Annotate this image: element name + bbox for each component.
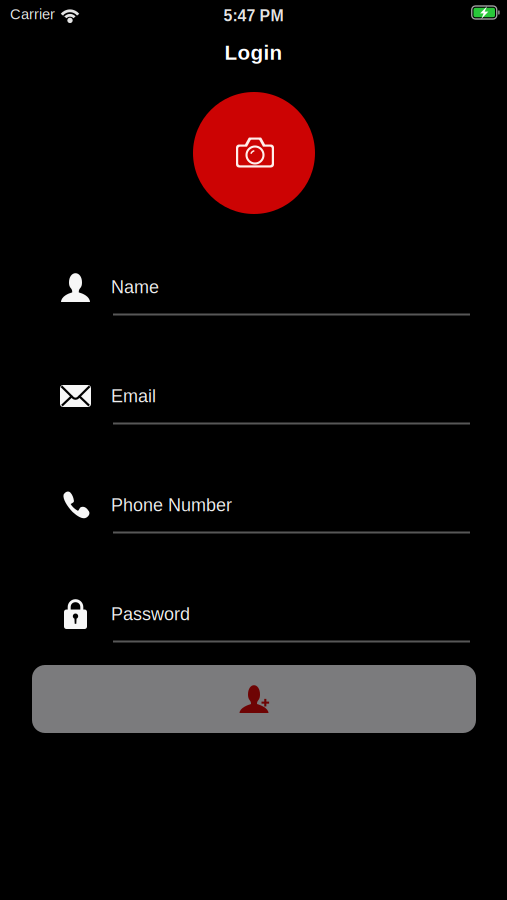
- staticText: Email: [111, 386, 156, 406]
- button[interactable]: Sign up: [32, 665, 476, 733]
- button[interactable]: Add profile photo: [193, 92, 315, 214]
- button[interactable]: Name: [30, 267, 470, 321]
- staticText: Carrier: [10, 6, 55, 22]
- staticText: Name: [111, 277, 159, 297]
- staticText: Phone Number: [111, 495, 232, 515]
- staticText: Login: [224, 41, 282, 64]
- button[interactable]: Password: [30, 593, 470, 648]
- staticText: Password: [111, 604, 190, 624]
- button[interactable]: Email: [30, 379, 470, 430]
- staticText: 5:47 PM: [223, 7, 283, 25]
- button[interactable]: Phone Number: [30, 485, 470, 539]
